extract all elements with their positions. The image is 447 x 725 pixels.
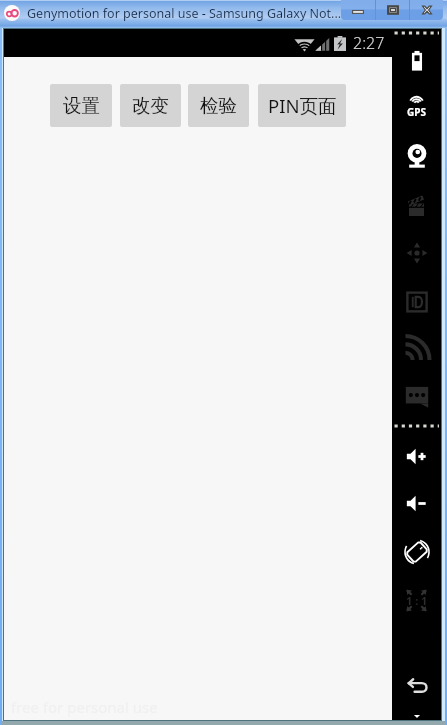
staticText: 1 : 1	[406, 593, 428, 608]
button[interactable]: Close	[410, 0, 443, 20]
staticText: Genymotion for personal use - Samsung Ga…	[27, 5, 342, 22]
staticText: 设置	[63, 94, 100, 117]
button[interactable]: 设置	[50, 84, 112, 127]
button[interactable]: More	[392, 699, 441, 725]
button[interactable]: 改变	[120, 84, 181, 127]
staticText: 2:27	[353, 32, 385, 54]
staticText: 改变	[132, 94, 169, 117]
button[interactable]: Volume down	[392, 486, 441, 520]
button[interactable]: Identifiers	[392, 285, 441, 319]
button[interactable]: Camera	[392, 139, 441, 173]
button[interactable]: Minimize	[341, 0, 375, 20]
button[interactable]: Maximize	[376, 0, 409, 20]
button[interactable]: PIN页面	[258, 84, 346, 127]
button[interactable]: GPS	[392, 90, 441, 124]
button[interactable]: Back	[392, 668, 441, 702]
button[interactable]: Rotate	[392, 535, 441, 569]
button[interactable]: Video recording	[392, 188, 441, 222]
button[interactable]: Move	[392, 236, 441, 270]
staticText: 检验	[200, 94, 237, 117]
button[interactable]: Network	[392, 331, 441, 365]
staticText: PIN页面	[268, 93, 337, 118]
button[interactable]: Messages	[392, 380, 441, 414]
staticText: GPS	[407, 105, 426, 119]
button[interactable]: Battery	[392, 44, 441, 78]
button[interactable]: 检验	[188, 84, 249, 127]
button[interactable]: Zoom one to one	[392, 583, 441, 617]
button[interactable]: Volume up	[392, 439, 441, 473]
